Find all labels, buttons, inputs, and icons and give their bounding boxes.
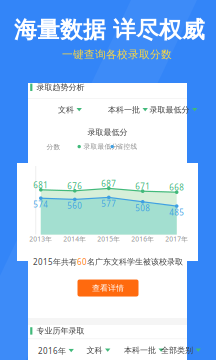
staticText: 687 [101, 178, 116, 189]
staticText: 全部类别 [161, 345, 193, 355]
staticText: 2015年共有 [33, 256, 77, 267]
staticText: 2016年 [131, 234, 154, 243]
staticText: 分数 [46, 143, 60, 151]
button[interactable]: 本科一批 [108, 105, 148, 115]
staticText: 文科 [86, 345, 102, 355]
staticText: 2015年 [97, 234, 120, 243]
staticText: 专业历年录取 [37, 326, 85, 336]
staticText: 668 [169, 182, 184, 193]
button[interactable]: 2016年 [38, 345, 74, 356]
staticText: 676 [67, 181, 82, 191]
staticText: 508 [135, 203, 150, 213]
staticText: 录取最低分 [87, 127, 127, 137]
staticText: 2017年 [165, 234, 188, 243]
button[interactable]: 本科一批 [124, 345, 164, 355]
staticText: 文科 [58, 105, 74, 115]
button[interactable]: 文科 [58, 105, 82, 115]
staticText: 海量数据 详尽权威 [14, 16, 205, 44]
staticText: 2014年 [63, 234, 86, 243]
staticText: 671 [135, 181, 150, 192]
staticText: 本科一批 [124, 345, 156, 355]
staticText: 省控线 [116, 142, 137, 151]
staticText: 2016年 [38, 345, 66, 356]
staticText: 录取最低分 [83, 142, 118, 151]
button[interactable]: 全部类别 [161, 345, 201, 355]
button[interactable]: 文科 [86, 345, 110, 355]
button[interactable]: 查看详情 [77, 279, 138, 296]
staticText: 681 [33, 180, 48, 190]
staticText: 录取趋势分析 [37, 82, 85, 92]
staticText: 485 [169, 207, 184, 218]
staticText: 录取最低分 [149, 105, 189, 115]
staticText: 名广东文科学生被该校录取 [87, 257, 183, 267]
staticText: 577 [101, 198, 116, 209]
staticText: 560 [67, 200, 82, 211]
staticText: 本科一批 [108, 105, 140, 115]
staticText: 574 [33, 199, 48, 210]
staticText: 查看详情 [92, 283, 124, 293]
staticText: 60 [77, 256, 87, 267]
staticText: 2013年 [29, 234, 52, 243]
button[interactable]: 录取最低分 [149, 105, 197, 115]
staticText: 一键查询各校录取分数 [62, 48, 172, 61]
